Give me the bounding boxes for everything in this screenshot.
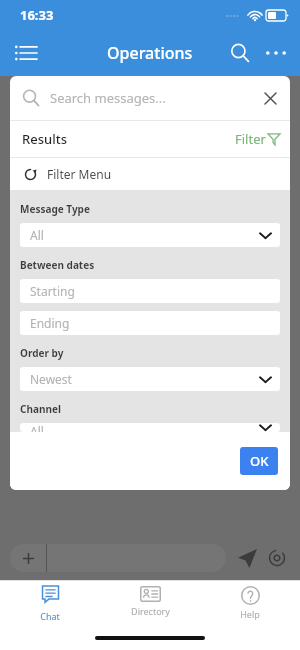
staticText: Newest xyxy=(30,371,72,387)
button[interactable]: All xyxy=(20,423,280,432)
staticText: Filter Menu xyxy=(47,166,112,182)
button[interactable]: Newest xyxy=(20,367,280,391)
button[interactable]: Starting xyxy=(20,279,280,303)
button[interactable]: Menu xyxy=(8,35,44,71)
button[interactable] xyxy=(10,544,226,572)
button[interactable]: Directory xyxy=(100,581,200,629)
button[interactable]: Mention xyxy=(264,545,290,571)
staticText: Directory xyxy=(131,605,170,617)
staticText: Filter xyxy=(235,130,266,148)
staticText: Ending xyxy=(30,315,70,331)
staticText: Operations xyxy=(107,42,193,64)
button[interactable]: OK xyxy=(240,447,278,475)
staticText: Message Type xyxy=(20,202,90,216)
staticText: Results xyxy=(22,130,67,148)
button[interactable]: More options xyxy=(258,35,294,71)
staticText: Chat xyxy=(40,610,60,622)
staticText: Help xyxy=(240,608,260,620)
button[interactable]: Clear search xyxy=(254,82,286,114)
button[interactable]: Filter Menu xyxy=(10,158,290,190)
staticText: All xyxy=(30,227,44,243)
staticText: Starting xyxy=(30,283,75,299)
staticText: All xyxy=(30,423,44,432)
staticText: Between dates xyxy=(20,258,95,272)
staticText: Order by xyxy=(20,346,64,360)
staticText: Search messages... xyxy=(50,89,166,107)
button[interactable]: Search messages... xyxy=(10,76,290,120)
staticText: 16:33 xyxy=(20,6,54,24)
button[interactable]: Send xyxy=(234,545,260,571)
staticText: OK xyxy=(250,452,269,470)
button[interactable]: Chat xyxy=(0,581,100,629)
button[interactable]: Search xyxy=(222,35,258,71)
button[interactable]: Filter xyxy=(225,126,290,152)
button[interactable]: Ending xyxy=(20,311,280,335)
button[interactable]: All xyxy=(20,223,280,247)
button[interactable]: Help xyxy=(200,581,300,629)
staticText: Channel xyxy=(20,402,61,416)
